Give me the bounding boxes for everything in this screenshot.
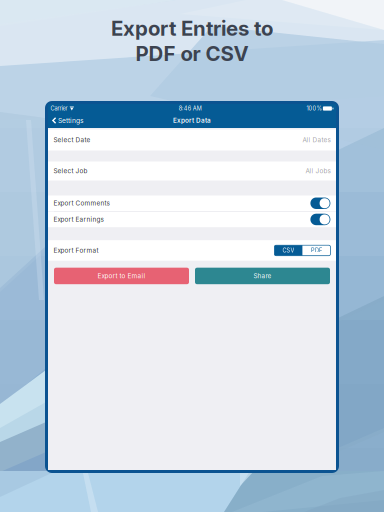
button[interactable]: Share [195,268,330,284]
staticText: Export to Email [97,272,145,280]
staticText: PDF [311,247,322,254]
staticText: Select Job [54,167,88,175]
button[interactable]: Select Date [48,129,336,150]
staticText: Share [253,272,271,280]
staticText: All Jobs [305,167,330,175]
button[interactable]: Settings [48,113,88,128]
staticText: CSV [282,247,294,254]
staticText: Export Data [173,117,211,124]
staticText: Export Earnings [54,216,104,223]
staticText: Select Date [54,136,91,144]
staticText: Export Format [54,247,99,254]
staticText: Carrier [51,105,68,112]
staticText: All Dates [302,136,330,144]
button[interactable]: Export Comments [48,195,336,211]
button[interactable]: Select Job [48,161,336,180]
staticText: 100% [306,105,321,112]
button[interactable]: Export Format [48,240,336,261]
staticText: Export Comments [54,199,110,207]
button[interactable]: Export Earnings [48,212,336,227]
staticText: PDF or CSV [135,41,248,66]
staticText: Settings [58,116,84,125]
staticText: Export Entries to [111,16,273,41]
staticText: 8:46 AM [179,105,202,112]
button[interactable]: Export to Email [54,268,189,284]
